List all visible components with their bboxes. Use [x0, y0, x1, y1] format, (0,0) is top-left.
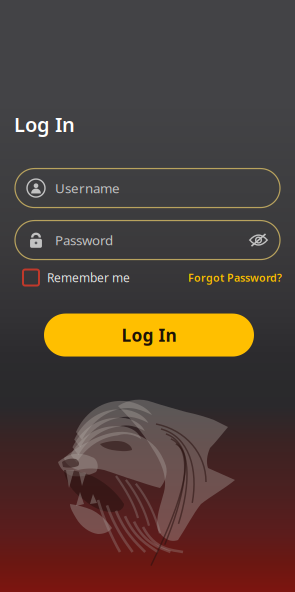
staticText: Log In — [121, 324, 176, 347]
button[interactable]: Remember me — [23, 270, 130, 286]
staticText: Log In — [14, 111, 75, 138]
button[interactable]: Log In — [44, 314, 254, 357]
staticText: Password — [55, 231, 113, 249]
staticText: Forgot Password? — [188, 270, 282, 285]
staticText: Remember me — [47, 270, 130, 285]
staticText: Username — [55, 179, 120, 197]
button[interactable]: Forgot Password? — [188, 270, 282, 285]
